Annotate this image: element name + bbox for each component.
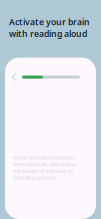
staticText: Activate your brain with reading aloud [9, 16, 90, 40]
button[interactable]: Back [10, 72, 18, 83]
staticText: whose tremulous branches seemed hardly a… [13, 154, 77, 181]
